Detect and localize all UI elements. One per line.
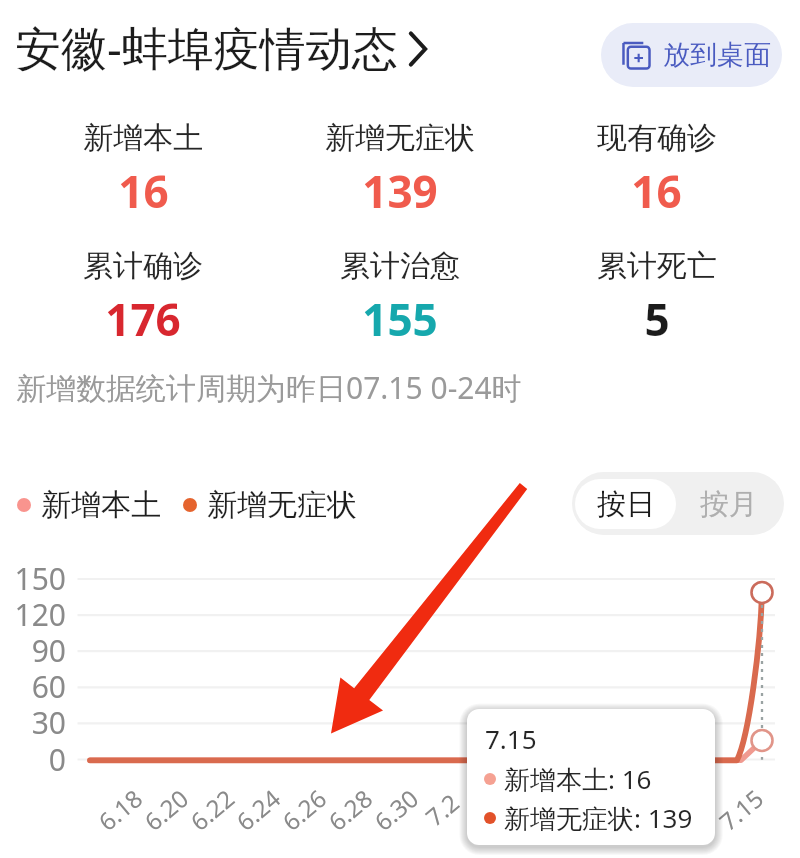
button[interactable]: 按月	[676, 479, 781, 529]
staticText: 累计确诊	[83, 247, 203, 285]
staticText: 6.26	[275, 781, 333, 837]
staticText: 176	[105, 289, 181, 349]
button[interactable]: 放到桌面	[601, 23, 782, 87]
staticText: 新增无症状: 139	[504, 800, 693, 836]
staticText: 安徽-蚌埠疫情动态	[15, 16, 398, 76]
staticText: 155	[362, 289, 438, 349]
staticText: 放到桌面	[663, 38, 771, 72]
staticText: 6.20	[137, 781, 195, 837]
staticText: 16	[118, 161, 169, 221]
staticText: 6.22	[183, 781, 241, 837]
staticText: 6.18	[91, 781, 149, 837]
staticText: 累计死亡	[597, 247, 717, 285]
staticText: 新增本土	[41, 486, 161, 524]
staticText: 现有确诊	[597, 119, 717, 157]
staticText: 5	[644, 289, 670, 349]
staticText: 新增无症状	[207, 486, 357, 524]
staticText: 90	[0, 630, 66, 671]
staticText: 按日	[597, 486, 655, 523]
staticText: 7.2	[418, 786, 466, 833]
staticText: 120	[0, 594, 66, 635]
staticText: 7.15	[485, 721, 537, 756]
staticText: 139	[362, 161, 438, 221]
staticText: 6.30	[367, 781, 425, 837]
staticText: 6.24	[229, 781, 287, 837]
staticText: 新增无症状	[325, 119, 475, 157]
staticText: 30	[0, 702, 66, 743]
staticText: 新增本土	[83, 119, 203, 157]
staticText: 60	[0, 666, 66, 707]
button[interactable]: 按日	[575, 479, 676, 529]
button[interactable]: 安徽-蚌埠疫情动态	[15, 16, 428, 76]
staticText: 16	[631, 161, 682, 221]
staticText: 新增本土: 16	[504, 761, 652, 797]
staticText: 新增数据统计周期为昨日07.15 0-24时	[16, 367, 522, 408]
staticText: 0	[0, 739, 66, 780]
staticText: 150	[0, 558, 66, 599]
staticText: 按月	[700, 486, 758, 523]
staticText: 6.28	[321, 781, 379, 837]
staticText: 累计治愈	[340, 247, 460, 285]
staticText: 7.15	[712, 781, 770, 837]
